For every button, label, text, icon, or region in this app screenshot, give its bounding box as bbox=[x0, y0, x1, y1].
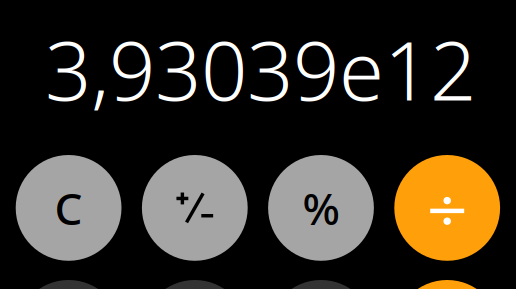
staticText: 3,93039e12 bbox=[45, 15, 476, 123]
button[interactable]: Multiply bbox=[394, 280, 500, 289]
staticText: % bbox=[302, 179, 339, 237]
button[interactable]: 9 bbox=[268, 280, 374, 289]
button[interactable]: C bbox=[16, 155, 121, 261]
button[interactable]: Divide bbox=[394, 155, 500, 261]
button[interactable]: 8 bbox=[142, 280, 248, 289]
button[interactable]: % bbox=[268, 155, 374, 261]
button[interactable]: 7 bbox=[16, 280, 121, 289]
staticText: C bbox=[55, 179, 83, 237]
button[interactable]: Plus Minus bbox=[142, 155, 248, 261]
